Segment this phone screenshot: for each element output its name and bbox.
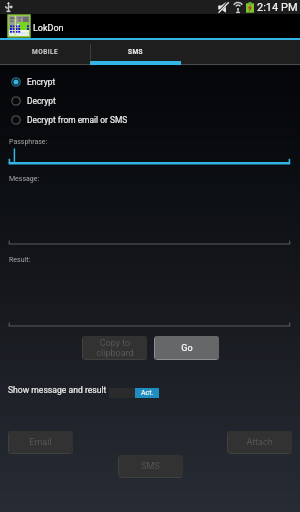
staticText: Result: bbox=[9, 256, 31, 264]
staticText: SMS bbox=[141, 461, 160, 472]
button[interactable]: Attach bbox=[227, 431, 292, 454]
staticText: Go bbox=[181, 343, 193, 354]
button[interactable]: Go bbox=[154, 336, 219, 360]
button[interactable]: SMS bbox=[118, 455, 183, 478]
button[interactable]: Show message and result bbox=[109, 388, 159, 398]
button[interactable]: Email bbox=[8, 431, 73, 454]
staticText: 2:14 PM bbox=[257, 1, 298, 14]
staticText: Show message and result bbox=[8, 385, 107, 395]
staticText: LokDon bbox=[33, 23, 64, 34]
button[interactable]: Copy to clipboard bbox=[82, 336, 147, 360]
button[interactable]: MOBILE bbox=[0, 40, 90, 65]
staticText: SMS bbox=[128, 48, 144, 56]
button[interactable]: Encrypt bbox=[0, 73, 300, 91]
staticText: Attach bbox=[246, 437, 273, 448]
staticText: Act. bbox=[141, 389, 154, 397]
staticText: Email bbox=[29, 437, 52, 448]
staticText: Passphrase: bbox=[9, 138, 48, 146]
staticText: Copy to clipboard bbox=[96, 338, 134, 358]
staticText: Decrypt bbox=[27, 96, 56, 106]
button[interactable]: Decrypt from email or SMS bbox=[0, 111, 300, 129]
staticText: Decrypt from email or SMS bbox=[27, 115, 128, 125]
staticText: Message: bbox=[9, 175, 40, 183]
button[interactable]: Decrypt bbox=[0, 92, 300, 110]
staticText: Encrypt bbox=[27, 77, 56, 87]
staticText: MOBILE bbox=[32, 48, 59, 56]
button[interactable]: SMS bbox=[90, 40, 181, 65]
